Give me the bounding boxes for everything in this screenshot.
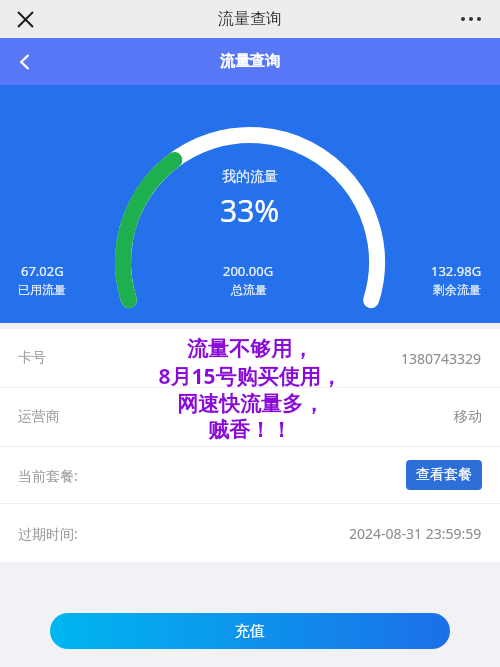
staticText: 67.02G: [21, 262, 64, 280]
button[interactable]: 充值: [50, 613, 450, 649]
staticText: 流量不够用，: [187, 336, 313, 362]
staticText: 流量查询: [220, 52, 280, 71]
staticText: 过期时间:: [18, 524, 78, 543]
staticText: 8月15号购买使用，: [158, 362, 342, 391]
staticText: 剩余流量: [433, 282, 481, 297]
staticText: 1380743329: [401, 349, 482, 368]
staticText: 已用流量: [18, 282, 66, 297]
staticText: 卡号: [18, 349, 46, 367]
button[interactable]: 卡号: [0, 329, 500, 387]
staticText: 移动: [454, 408, 482, 426]
staticText: 贼香！！: [208, 417, 292, 443]
staticText: 200.00G: [223, 262, 274, 280]
staticText: 2024-08-31 23:59:59: [349, 524, 482, 543]
button[interactable]: 查看套餐: [406, 460, 482, 490]
staticText: 我的流量: [222, 168, 278, 186]
button[interactable]: Back: [8, 45, 42, 79]
button[interactable]: 当前套餐:: [0, 447, 500, 503]
staticText: 网速快流量多，: [177, 391, 324, 417]
button[interactable]: 运营商: [0, 388, 500, 446]
staticText: 运营商: [18, 408, 60, 426]
staticText: 总流量: [231, 282, 267, 297]
staticText: 查看套餐: [416, 466, 472, 484]
button[interactable]: More options: [454, 4, 488, 34]
staticText: 33%: [220, 190, 280, 231]
staticText: 充值: [235, 622, 265, 641]
staticText: 流量查询: [218, 9, 282, 29]
button[interactable]: Close: [10, 4, 40, 34]
button[interactable]: 过期时间:: [0, 504, 500, 562]
staticText: 132.98G: [431, 262, 482, 280]
staticText: 当前套餐:: [18, 466, 78, 485]
